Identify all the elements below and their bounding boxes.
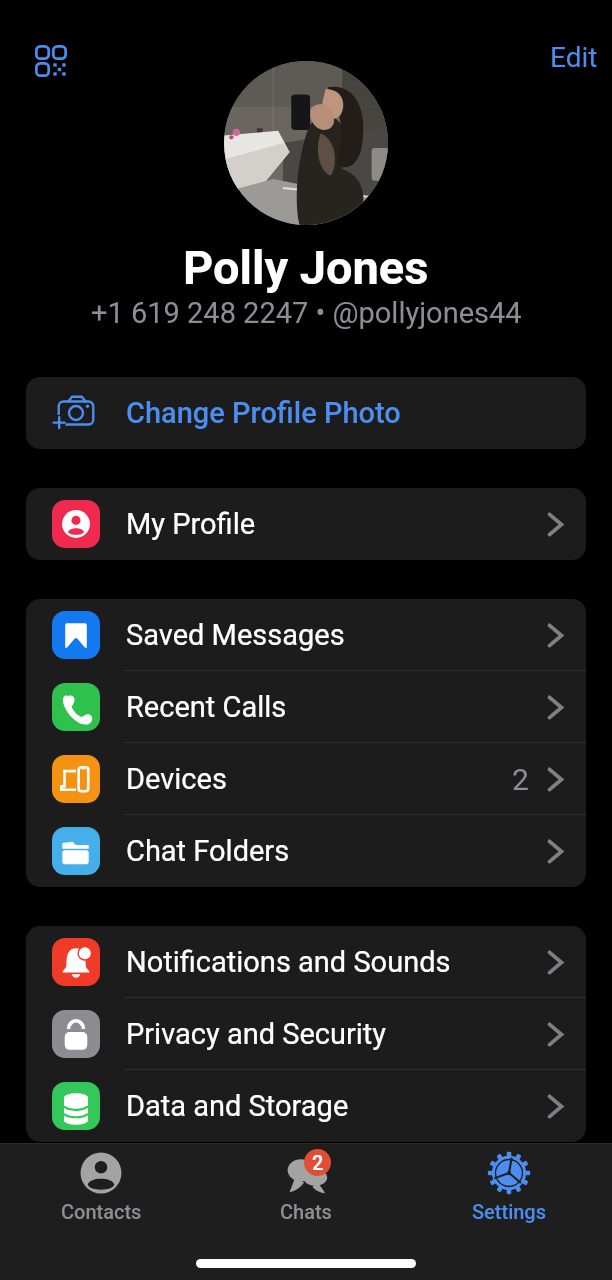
button[interactable]: Chat Folders xyxy=(26,815,586,887)
staticText: Contacts xyxy=(61,1200,142,1223)
staticText: 2 xyxy=(312,1151,324,1174)
staticText: +1 619 248 2247 • @pollyjones44 xyxy=(91,296,522,330)
button[interactable]: Data and Storage xyxy=(26,1070,586,1142)
staticText: Change Profile Photo xyxy=(126,396,401,430)
staticText: Polly Jones xyxy=(183,240,429,295)
button[interactable]: 2 xyxy=(231,1150,381,1234)
staticText: Chats xyxy=(280,1200,332,1223)
button[interactable]: Settings xyxy=(434,1150,584,1234)
button[interactable]: Edit xyxy=(536,35,612,80)
button[interactable]: Privacy and Security xyxy=(26,998,586,1070)
staticText: Saved Messages xyxy=(126,618,345,652)
staticText: My Profile xyxy=(126,507,256,541)
staticText: Edit xyxy=(550,41,598,74)
button[interactable]: Profile photo xyxy=(224,61,388,225)
button[interactable]: Devices xyxy=(26,743,586,815)
staticText: Notifications and Sounds xyxy=(126,945,451,979)
staticText: Devices xyxy=(126,762,227,796)
button[interactable]: QR code xyxy=(27,37,75,85)
staticText: Recent Calls xyxy=(126,690,287,724)
button[interactable]: Saved Messages xyxy=(26,599,586,671)
staticText: 2 xyxy=(512,762,529,797)
staticText: Data and Storage xyxy=(126,1089,349,1123)
button[interactable]: Contacts xyxy=(26,1150,176,1234)
button[interactable]: Recent Calls xyxy=(26,671,586,743)
button[interactable]: Change Profile Photo xyxy=(26,377,586,449)
staticText: Settings xyxy=(472,1200,547,1223)
button[interactable]: Notifications and Sounds xyxy=(26,926,586,998)
staticText: Chat Folders xyxy=(126,834,290,868)
button[interactable]: My Profile xyxy=(26,488,586,560)
staticText: Privacy and Security xyxy=(126,1017,387,1051)
